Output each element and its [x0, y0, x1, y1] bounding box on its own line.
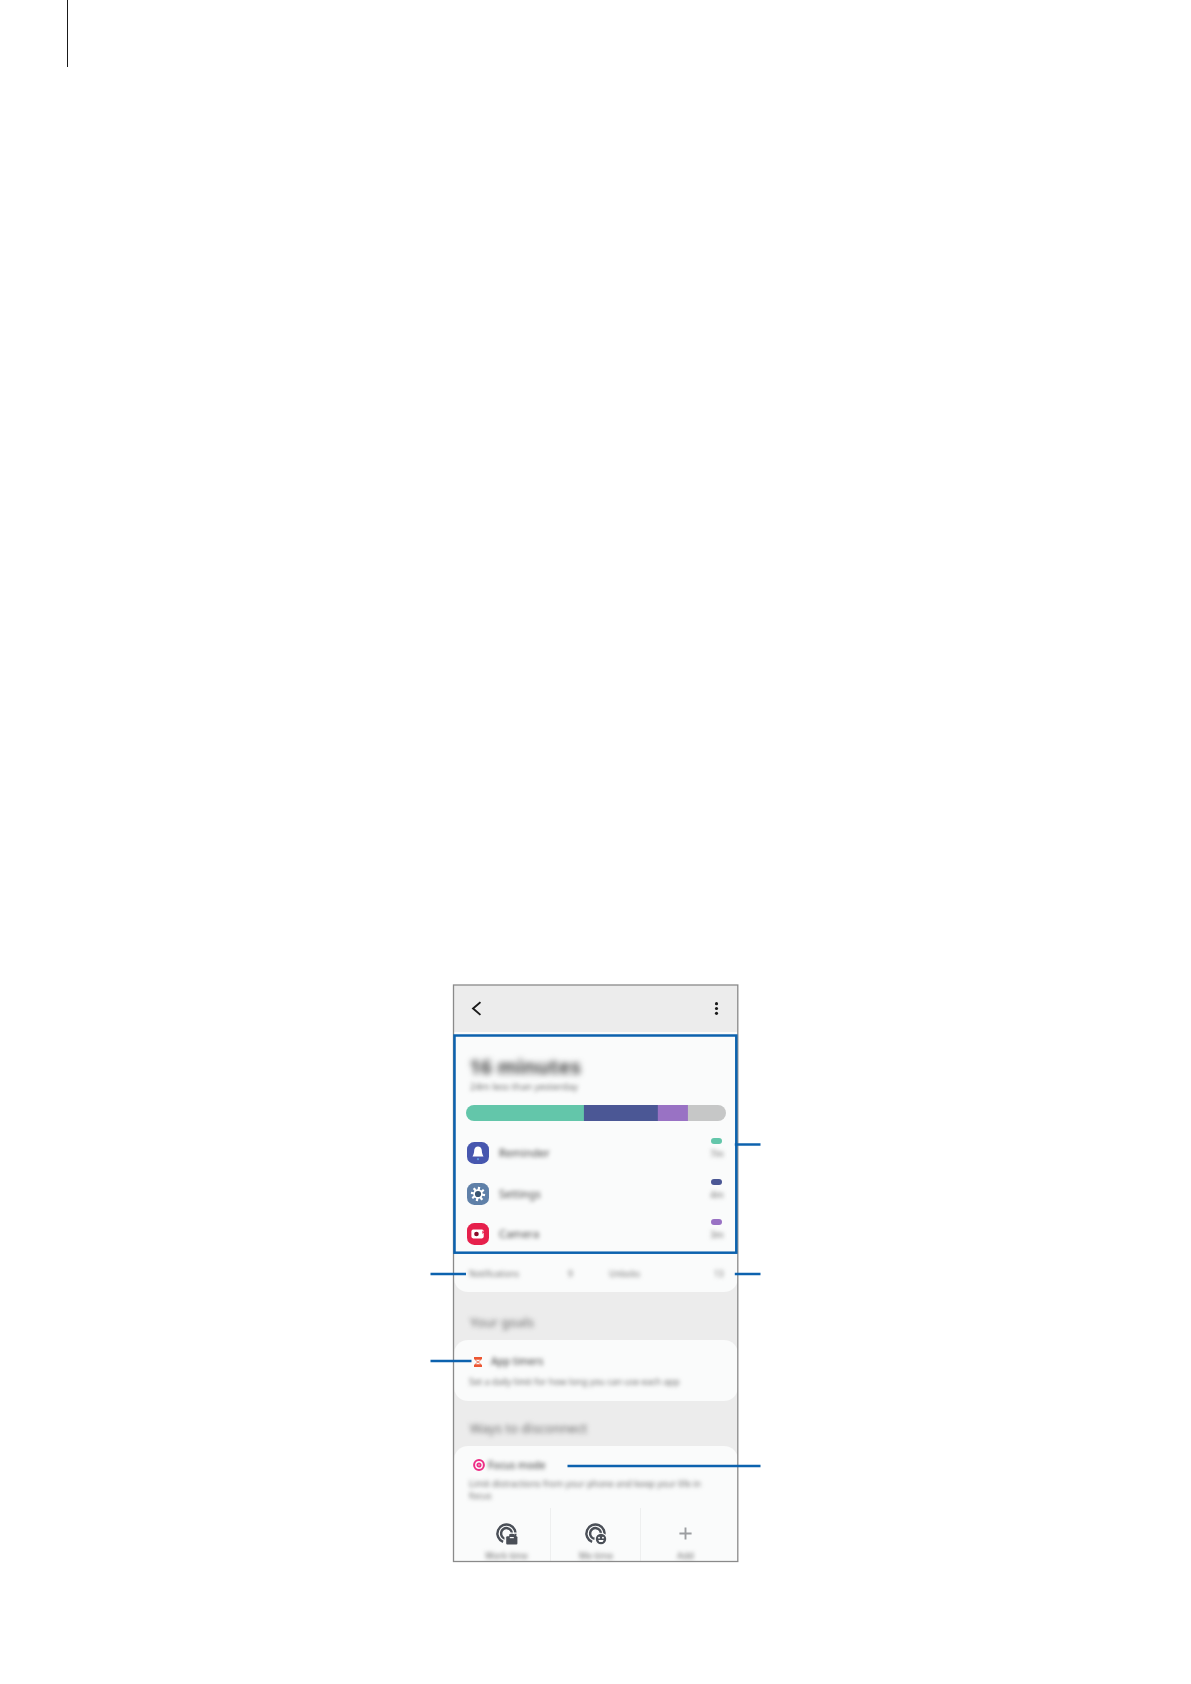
staticText: 7m — [705, 1147, 729, 1159]
staticText: Limit distractions from your phone and k… — [469, 1477, 713, 1502]
button[interactable]: Notifications — [454, 1254, 738, 1292]
button[interactable]: Work time — [462, 1508, 550, 1561]
staticText: Unlocks — [609, 1268, 641, 1279]
button[interactable]: More options — [705, 997, 728, 1020]
staticText: 3m — [705, 1228, 729, 1240]
staticText: Work time — [485, 1550, 528, 1561]
staticText: Your goals — [470, 1313, 535, 1331]
staticText: 13 — [714, 1268, 724, 1279]
button[interactable]: App timers — [454, 1340, 738, 1401]
staticText: 24m less than yesterday — [470, 1080, 578, 1093]
button[interactable]: Add — [641, 1508, 730, 1561]
button[interactable]: Settings — [454, 1173, 738, 1214]
staticText: Focus mode — [488, 1458, 546, 1472]
staticText: 9 — [568, 1268, 573, 1279]
staticText: Set a daily limit for how long you can u… — [469, 1375, 680, 1387]
button[interactable]: Camera — [454, 1213, 738, 1254]
staticText: Ways to disconnect — [470, 1419, 588, 1437]
staticText: Add — [677, 1550, 694, 1561]
button[interactable]: Focus mode — [473, 1459, 485, 1471]
button[interactable]: Reminder — [454, 1132, 738, 1173]
staticText: 4m — [705, 1188, 729, 1200]
staticText: Settings — [499, 1186, 541, 1201]
staticText: Notifications — [469, 1268, 519, 1279]
button[interactable]: Me time — [551, 1508, 640, 1561]
staticText: App timers — [491, 1354, 544, 1368]
button[interactable]: Navigate back — [465, 997, 488, 1020]
staticText: 16 minutes — [469, 1052, 581, 1080]
staticText: Reminder — [499, 1145, 550, 1160]
staticText: Camera — [499, 1226, 540, 1241]
staticText: Me time — [579, 1550, 613, 1561]
